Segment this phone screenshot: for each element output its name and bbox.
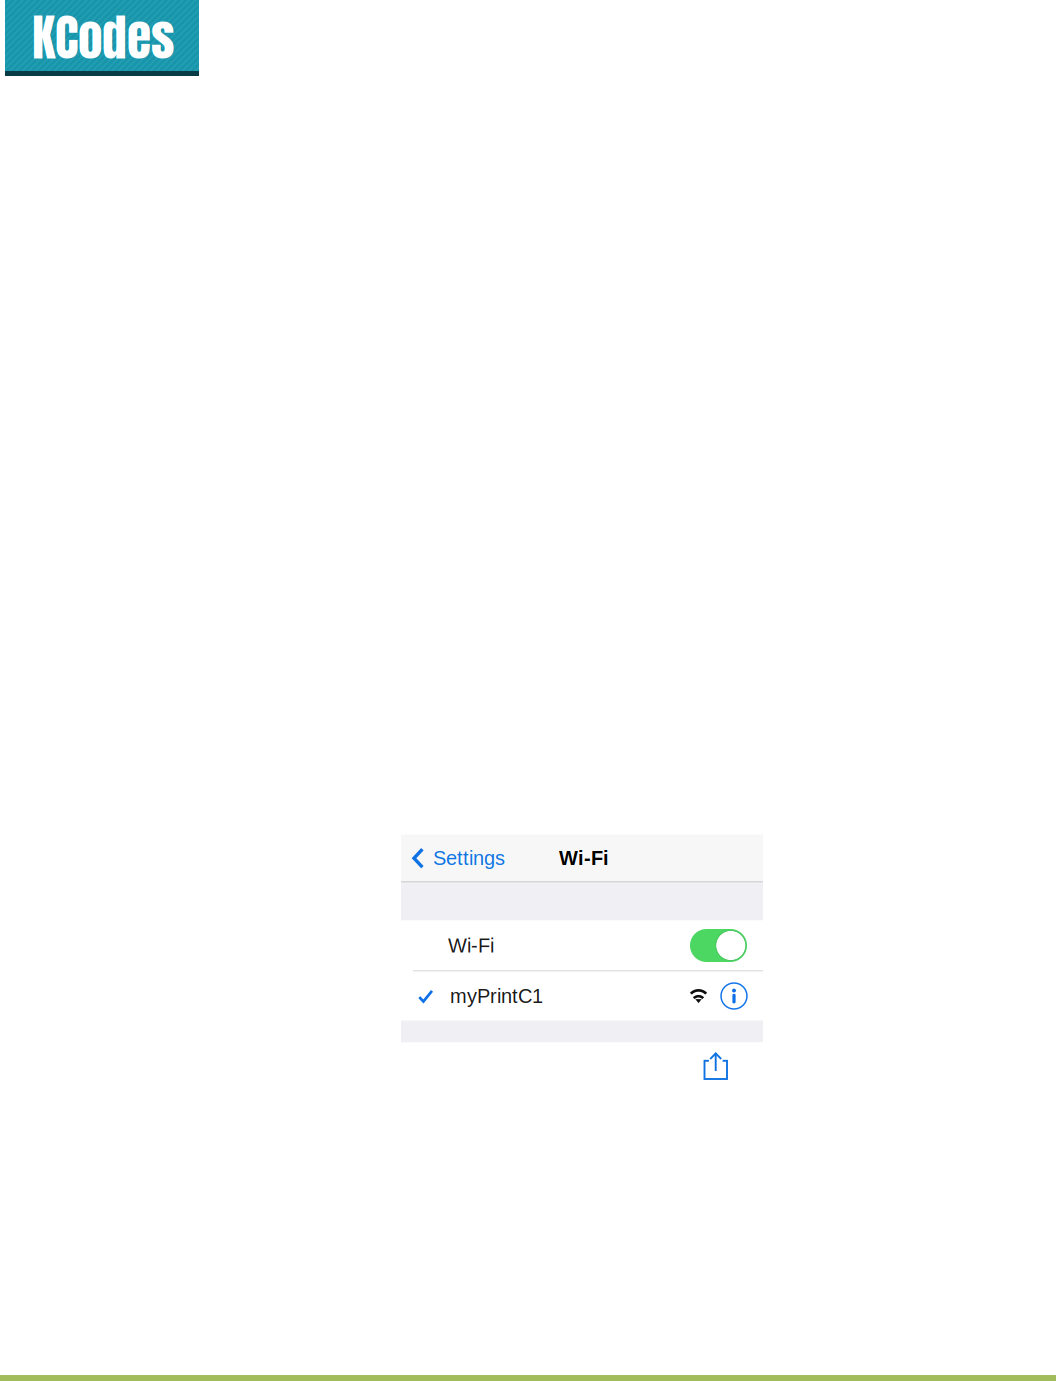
staticText: Settings [433, 847, 505, 869]
button[interactable]: Share [694, 1044, 738, 1088]
button[interactable]: Wi-Fi [401, 920, 763, 970]
staticText: myPrintC1 [450, 985, 543, 1007]
staticText: Wi-Fi [448, 934, 494, 957]
button[interactable]: Settings [401, 834, 515, 881]
staticText: Wi-Fi [559, 847, 609, 869]
staticText: KCodes [32, 0, 174, 75]
button[interactable]: myPrintC1 [401, 971, 763, 1020]
